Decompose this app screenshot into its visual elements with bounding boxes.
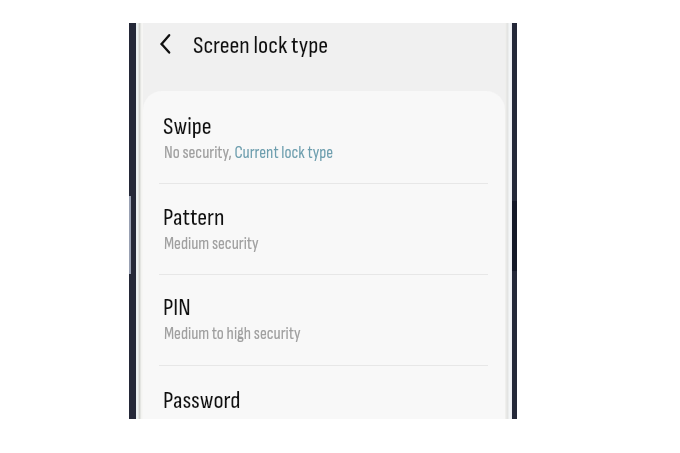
staticText: Screen lock type (193, 31, 329, 60)
staticText: Pattern (163, 203, 225, 232)
staticText: Swipe (163, 112, 212, 141)
button[interactable]: PIN (143, 275, 505, 365)
staticText: No security, Current lock type (164, 143, 334, 163)
button[interactable]: Pattern (143, 184, 505, 274)
button[interactable]: Swipe (143, 91, 505, 183)
staticText: Medium to high security (164, 324, 301, 344)
button[interactable]: Navigate up (150, 30, 182, 58)
staticText: PIN (163, 293, 191, 322)
button[interactable]: Password (143, 366, 505, 416)
staticText: Password (163, 386, 241, 415)
staticText: Medium security (164, 234, 259, 254)
